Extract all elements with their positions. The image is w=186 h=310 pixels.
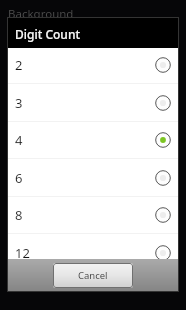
button[interactable]: 2 (8, 48, 178, 84)
button[interactable]: 3 (8, 84, 178, 122)
staticText: 12 (15, 244, 30, 259)
staticText: Cancel (78, 269, 108, 282)
button[interactable]: Cancel (53, 263, 133, 288)
staticText: 8 (15, 206, 23, 224)
staticText: Digit Count (15, 26, 81, 42)
button[interactable]: 4 (8, 121, 178, 159)
staticText: 6 (15, 169, 23, 187)
button[interactable]: 12 (8, 234, 178, 259)
staticText: 2 (15, 56, 23, 74)
staticText: 4 (15, 131, 23, 149)
staticText: 3 (15, 94, 23, 112)
button[interactable]: 8 (8, 196, 178, 234)
staticText: Background (8, 6, 74, 22)
button[interactable]: 6 (8, 159, 178, 197)
